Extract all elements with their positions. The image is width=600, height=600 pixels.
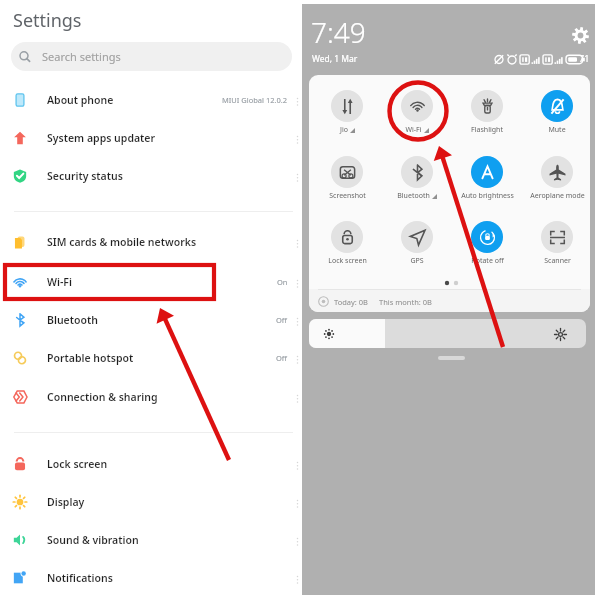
staticText: SIM cards & mobile networks [47, 235, 197, 249]
staticText: Lock screen [328, 256, 367, 266]
button[interactable]: Lock screen [0, 448, 302, 480]
button[interactable]: System apps updater [0, 122, 302, 154]
button[interactable]: Notifications [0, 562, 302, 594]
staticText: Jio [340, 125, 348, 135]
staticText: Rotate off [471, 256, 504, 266]
button[interactable]: Aeroplane mode [522, 156, 590, 201]
staticText: About phone [47, 93, 114, 107]
staticText: Mute [548, 125, 566, 135]
staticText: Display [47, 495, 85, 509]
staticText: Wed, 1 Mar [312, 53, 358, 65]
button[interactable]: Settings [568, 23, 592, 47]
staticText: GPS [410, 256, 424, 266]
button[interactable]: Mute [522, 90, 590, 135]
staticText: Security status [47, 169, 123, 183]
staticText: Flashlight [471, 125, 503, 135]
button[interactable]: Jio [312, 90, 382, 135]
staticText: MIUI Global 12.0.2 [222, 95, 288, 105]
button[interactable]: Rotate off [452, 221, 522, 266]
button[interactable]: About phone [0, 84, 302, 116]
staticText: Off [276, 353, 288, 363]
staticText: Auto brightness [461, 191, 514, 201]
button[interactable]: Scanner [522, 221, 590, 266]
button[interactable] [309, 319, 586, 348]
button[interactable]: Sound & vibration [0, 524, 302, 556]
button[interactable]: Wi-Fi [382, 90, 452, 135]
staticText: Portable hotspot [47, 351, 134, 365]
staticText: Search settings [42, 49, 121, 64]
button[interactable]: GPS [382, 221, 452, 266]
staticText: 71 [579, 52, 590, 64]
staticText: 7:49 [311, 13, 366, 51]
button[interactable]: Bluetooth [0, 304, 302, 336]
staticText: Today: 0B [334, 297, 368, 307]
staticText: Aeroplane mode [530, 191, 585, 201]
staticText: Screenshot [329, 191, 366, 201]
staticText: Scanner [544, 256, 571, 266]
staticText: Bluetooth [397, 191, 430, 201]
staticText: System apps updater [47, 131, 156, 145]
button[interactable]: Lock screen [312, 221, 382, 266]
button[interactable]: Wi-Fi [0, 266, 302, 298]
button[interactable]: Bluetooth [382, 156, 452, 201]
button[interactable]: Screenshot [312, 156, 382, 201]
button[interactable]: Auto brightness [452, 156, 522, 201]
button[interactable]: Connection & sharing [0, 381, 302, 413]
staticText: Wi-Fi [47, 275, 72, 289]
staticText: Bluetooth [47, 313, 98, 327]
staticText: Off [276, 315, 288, 325]
button[interactable]: Portable hotspot [0, 342, 302, 374]
button[interactable]: Security status [0, 160, 302, 192]
button[interactable]: SIM cards & mobile networks [0, 226, 302, 258]
staticText: Lock screen [47, 457, 108, 471]
button[interactable]: Flashlight [452, 90, 522, 135]
staticText: Connection & sharing [47, 390, 158, 404]
staticText: On [277, 277, 288, 287]
staticText: Settings [13, 8, 82, 33]
staticText: Notifications [47, 571, 113, 585]
staticText: This month: 0B [379, 297, 432, 307]
button[interactable]: Display [0, 486, 302, 518]
staticText: Wi-Fi [405, 125, 422, 135]
button[interactable]: Search settings [11, 42, 292, 71]
staticText: Sound & vibration [47, 533, 139, 547]
